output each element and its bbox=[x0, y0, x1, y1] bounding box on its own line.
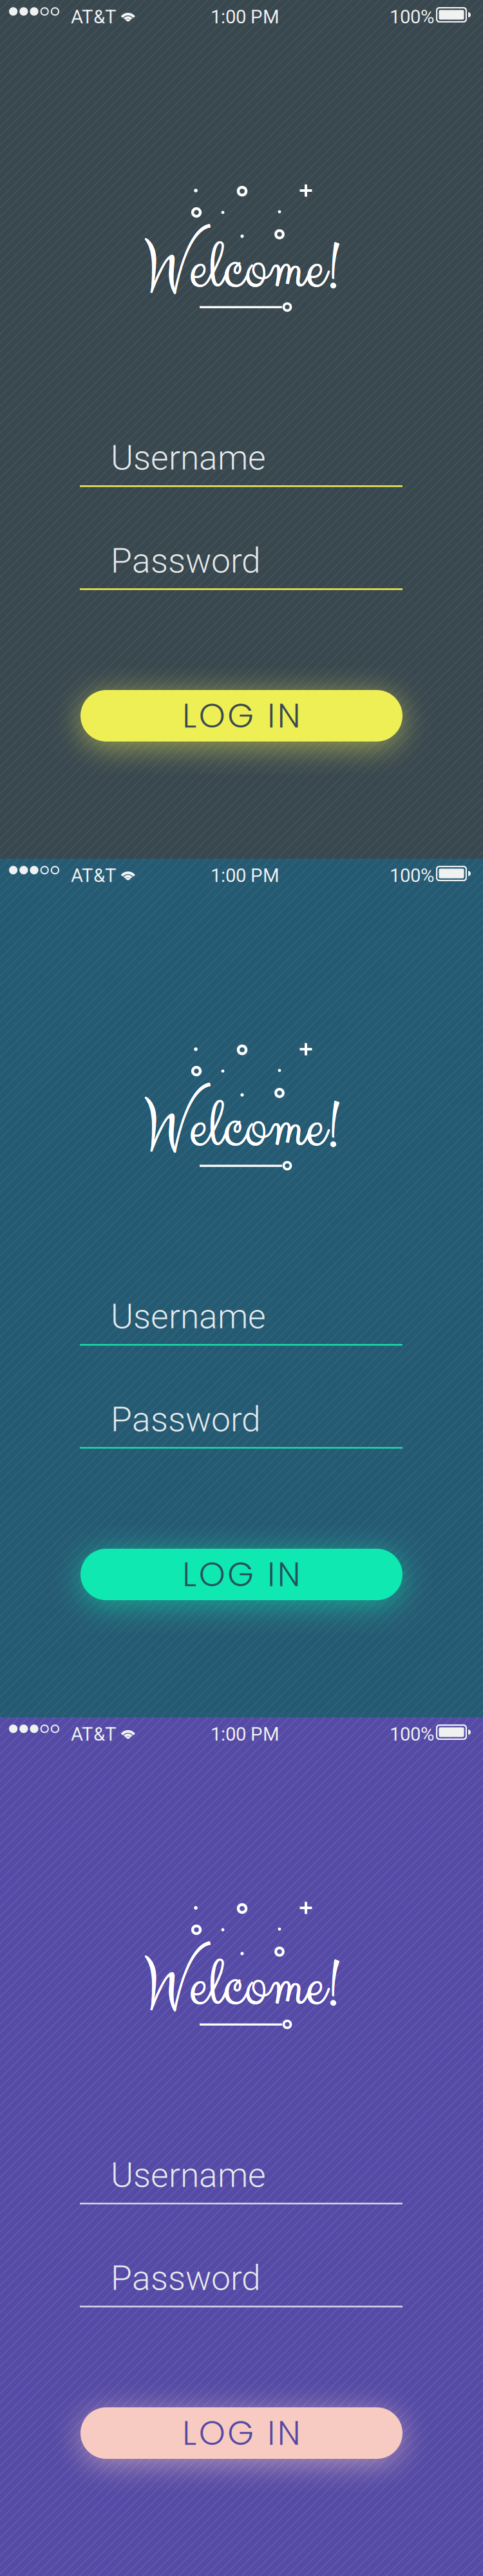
staticText: Welcome! bbox=[143, 1941, 339, 2031]
staticText: Welcome! bbox=[144, 1083, 340, 1173]
staticText: Welcome! bbox=[144, 224, 340, 314]
staticText: Welcome! bbox=[144, 1941, 340, 2032]
staticText: Welcome! bbox=[144, 1082, 340, 1173]
staticText: Welcome! bbox=[143, 223, 339, 314]
staticText: 100% bbox=[390, 6, 434, 28]
staticText: Welcome! bbox=[144, 1082, 339, 1173]
staticText: Welcome! bbox=[144, 1941, 339, 2032]
staticText: Welcome! bbox=[144, 1083, 339, 1173]
staticText: 100% bbox=[390, 1723, 434, 1745]
staticText: 1:00 PM bbox=[211, 864, 279, 887]
staticText: Welcome! bbox=[143, 224, 339, 315]
staticText: Username bbox=[111, 438, 266, 478]
staticText: Welcome! bbox=[143, 1941, 339, 2032]
staticText: LOG IN bbox=[182, 1551, 301, 1598]
staticText: Welcome! bbox=[144, 224, 340, 315]
staticText: Welcome! bbox=[144, 224, 339, 315]
staticText: Username bbox=[111, 1296, 266, 1337]
staticText: Password bbox=[111, 1399, 261, 1440]
staticText: Welcome! bbox=[143, 224, 339, 314]
button[interactable]: LOG IN bbox=[80, 2407, 402, 2459]
staticText: Password bbox=[111, 2258, 261, 2298]
staticText: Welcome! bbox=[144, 223, 340, 314]
staticText: Welcome! bbox=[143, 1941, 339, 2032]
staticText: Welcome! bbox=[143, 1082, 339, 1173]
staticText: LOG IN bbox=[182, 2410, 301, 2457]
staticText: 1:00 PM bbox=[211, 1723, 279, 1745]
staticText: 1:00 PM bbox=[211, 6, 279, 28]
staticText: Welcome! bbox=[143, 1083, 339, 1173]
staticText: Welcome! bbox=[144, 1941, 340, 2031]
staticText: Welcome! bbox=[144, 1082, 340, 1173]
staticText: Welcome! bbox=[144, 223, 339, 314]
staticText: AT&T bbox=[71, 1723, 117, 1745]
staticText: Welcome! bbox=[143, 1082, 339, 1173]
staticText: Welcome! bbox=[144, 1941, 339, 2031]
button[interactable]: LOG IN bbox=[80, 690, 402, 742]
staticText: Welcome! bbox=[144, 1941, 340, 2032]
staticText: Username bbox=[111, 2155, 266, 2195]
button[interactable]: LOG IN bbox=[80, 1549, 402, 1600]
staticText: 100% bbox=[390, 864, 434, 887]
staticText: AT&T bbox=[71, 6, 117, 28]
staticText: Password bbox=[111, 541, 261, 581]
staticText: AT&T bbox=[71, 864, 117, 887]
staticText: LOG IN bbox=[182, 692, 301, 739]
